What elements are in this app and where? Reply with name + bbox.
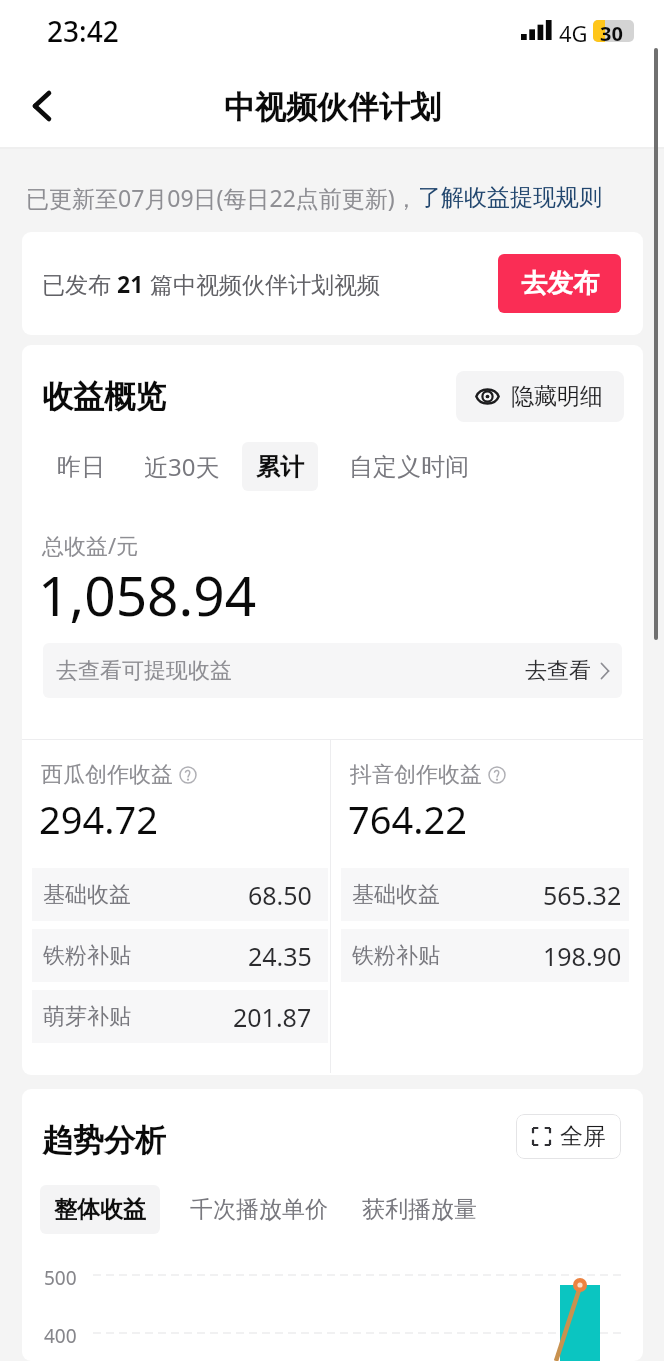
staticText: 已发布 <box>42 268 117 299</box>
staticText: 21 <box>117 268 144 299</box>
staticText: 千次播放单价 <box>190 1195 328 1224</box>
button[interactable]: Back <box>16 80 68 132</box>
button[interactable]: 自定义时间 <box>335 442 483 491</box>
button[interactable]: 获利播放量 <box>348 1185 491 1234</box>
staticText: 总收益/元 <box>42 530 139 560</box>
staticText: 198.90 <box>543 939 622 973</box>
staticText: 西瓜创作收益 <box>41 761 173 789</box>
staticText: 昨日 <box>57 452 105 482</box>
button[interactable]: 累计 <box>242 442 318 491</box>
staticText: 了解收益提现规则 <box>418 183 602 212</box>
staticText: 201.87 <box>233 1000 312 1034</box>
staticText: 基础收益 <box>43 881 131 909</box>
staticText: 基础收益 <box>352 881 440 909</box>
button[interactable]: 整体收益 <box>40 1185 160 1234</box>
button[interactable]: 千次播放单价 <box>176 1185 342 1234</box>
button[interactable]: 去发布 <box>498 254 621 313</box>
staticText: 去查看可提现收益 <box>56 657 232 685</box>
button[interactable]: 昨日 <box>43 442 119 491</box>
staticText: 整体收益 <box>54 1195 146 1224</box>
staticText: 隐藏明细 <box>511 382 603 411</box>
button[interactable]: 全屏 Full screen <box>516 1114 621 1159</box>
staticText: 去发布 <box>521 267 599 300</box>
staticText: 近30天 <box>144 450 220 483</box>
staticText: 去查看 <box>525 657 591 685</box>
button[interactable]: 隐藏明细 <box>456 371 624 422</box>
staticText: 764.22 <box>348 793 467 845</box>
staticText: 抖音创作收益 <box>350 761 482 789</box>
staticText: 24.35 <box>248 939 312 973</box>
staticText: 1,058.94 <box>38 557 257 632</box>
staticText: 自定义时间 <box>349 452 469 482</box>
staticText: 趋势分析 <box>42 1121 166 1160</box>
staticText: 篇中视频伙伴计划视频 <box>144 268 380 299</box>
staticText: 获利播放量 <box>362 1195 477 1224</box>
staticText: 500 <box>44 1265 77 1291</box>
button[interactable]: 近30天 <box>130 442 234 491</box>
staticText: 累计 <box>256 452 304 482</box>
staticText: 294.72 <box>39 793 158 845</box>
staticText: 400 <box>44 1323 77 1349</box>
staticText: 已更新至07月09日(每日22点前更新)， <box>26 182 418 213</box>
staticText: 23:42 <box>47 12 119 50</box>
staticText: 萌芽补贴 <box>43 1003 131 1031</box>
staticText: 铁粉补贴 <box>43 942 131 970</box>
staticText: 铁粉补贴 <box>352 942 440 970</box>
staticText: 68.50 <box>248 878 312 912</box>
button[interactable]: 去查看可提现收益 <box>43 643 622 698</box>
staticText: 收益概览 <box>42 377 166 416</box>
staticText: 30 <box>600 20 623 42</box>
staticText: 全屏 <box>560 1122 606 1151</box>
staticText: 565.32 <box>543 878 622 912</box>
staticText: 中视频伙伴计划 <box>224 88 441 127</box>
button[interactable]: 了解收益提现规则 <box>418 183 602 212</box>
staticText: 4G <box>559 18 588 48</box>
